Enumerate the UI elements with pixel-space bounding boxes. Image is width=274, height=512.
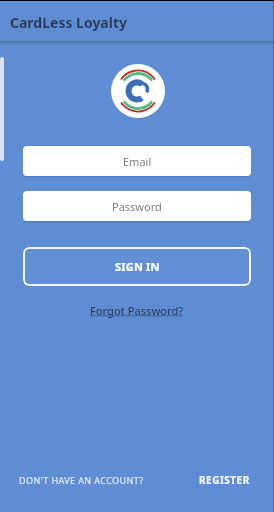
- staticText: Email: [123, 154, 152, 169]
- button[interactable]: Email: [23, 146, 251, 176]
- button[interactable]: REGISTER: [199, 473, 250, 487]
- staticText: SIGN IN: [115, 259, 160, 274]
- staticText: DON'T HAVE AN ACCOUNT?: [19, 474, 144, 486]
- staticText: Password: [112, 199, 162, 214]
- button[interactable]: Forgot Password?: [90, 303, 184, 318]
- staticText: CardLess Loyalty: [10, 13, 127, 32]
- button[interactable]: SIGN IN: [23, 247, 251, 286]
- button[interactable]: Password: [23, 191, 251, 221]
